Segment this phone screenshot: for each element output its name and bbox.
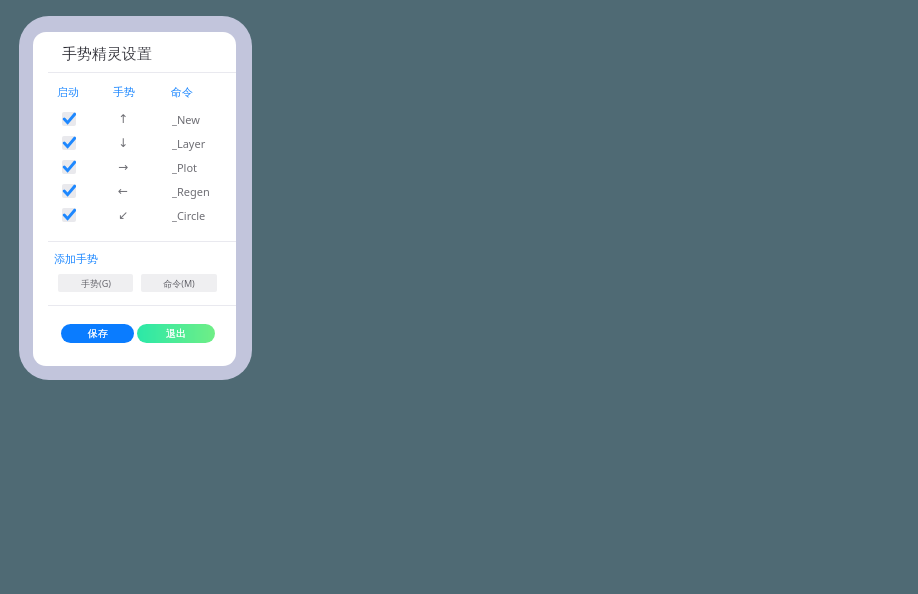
staticText: ↓ <box>118 136 129 150</box>
staticText: 退出 <box>166 327 186 340</box>
button[interactable]: Enable gesture <box>62 160 76 174</box>
button[interactable]: Enable gesture <box>62 208 76 222</box>
staticText: _New <box>172 112 200 127</box>
staticText: 保存 <box>88 327 108 340</box>
staticText: 手势(G) <box>81 277 111 289</box>
staticText: _Plot <box>172 160 198 175</box>
button[interactable]: 保存 <box>61 324 134 343</box>
staticText: 手势 <box>113 85 135 99</box>
button[interactable]: Enable gesture <box>62 112 76 126</box>
staticText: → <box>118 160 129 174</box>
button[interactable]: Enable gesture <box>62 184 76 198</box>
staticText: 启动 <box>57 85 79 99</box>
button[interactable]: 退出 <box>137 324 215 343</box>
staticText: _Regen <box>172 184 210 199</box>
staticText: 手势精灵设置 <box>62 45 152 64</box>
button[interactable]: 命令(M) <box>141 274 217 292</box>
staticText: _Layer <box>172 136 206 151</box>
staticText: ↙ <box>118 208 129 222</box>
staticText: 添加手势 <box>54 252 98 266</box>
staticText: ← <box>118 184 129 198</box>
staticText: _Circle <box>172 208 206 223</box>
staticText: 命令(M) <box>163 277 195 289</box>
staticText: ↑ <box>118 112 129 126</box>
button[interactable]: Enable gesture <box>62 136 76 150</box>
staticText: 命令 <box>171 85 193 99</box>
button[interactable]: 手势(G) <box>58 274 133 292</box>
